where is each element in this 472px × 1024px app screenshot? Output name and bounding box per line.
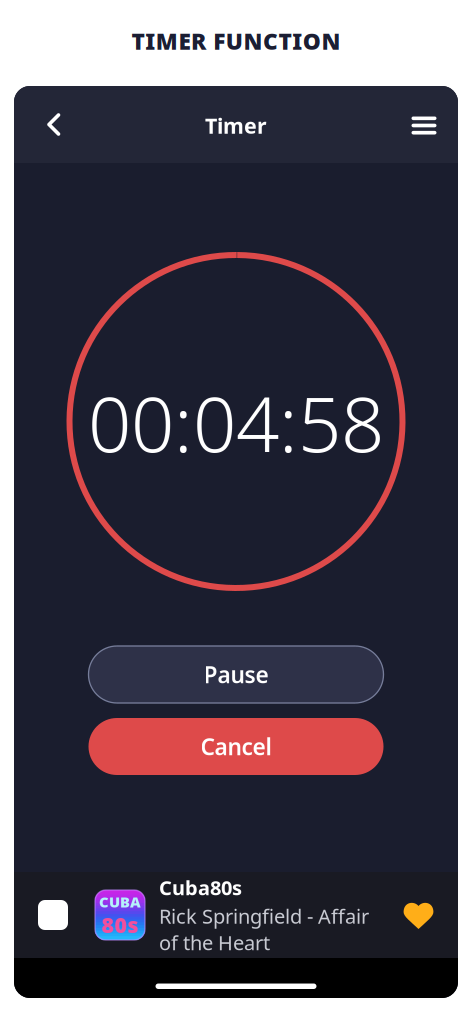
button[interactable]: Cancel (88, 718, 383, 775)
staticText: Cancel (200, 731, 271, 761)
staticText: Timer (205, 111, 267, 140)
staticText: CUBA (99, 892, 141, 912)
staticText: TIMER FUNCTION (132, 26, 340, 56)
button[interactable]: Back (34, 102, 78, 146)
button[interactable]: Menu (402, 102, 446, 146)
staticText: Cuba80s (159, 874, 242, 901)
button[interactable]: Stop (38, 888, 68, 942)
staticText: 00:04:58 (88, 372, 384, 473)
button[interactable]: Favourite (403, 900, 434, 930)
staticText: Rick Springfield - Affair of the Heart (159, 903, 369, 956)
button[interactable]: Pause (88, 646, 383, 703)
staticText: Pause (203, 659, 268, 689)
staticText: 80s (101, 911, 138, 939)
